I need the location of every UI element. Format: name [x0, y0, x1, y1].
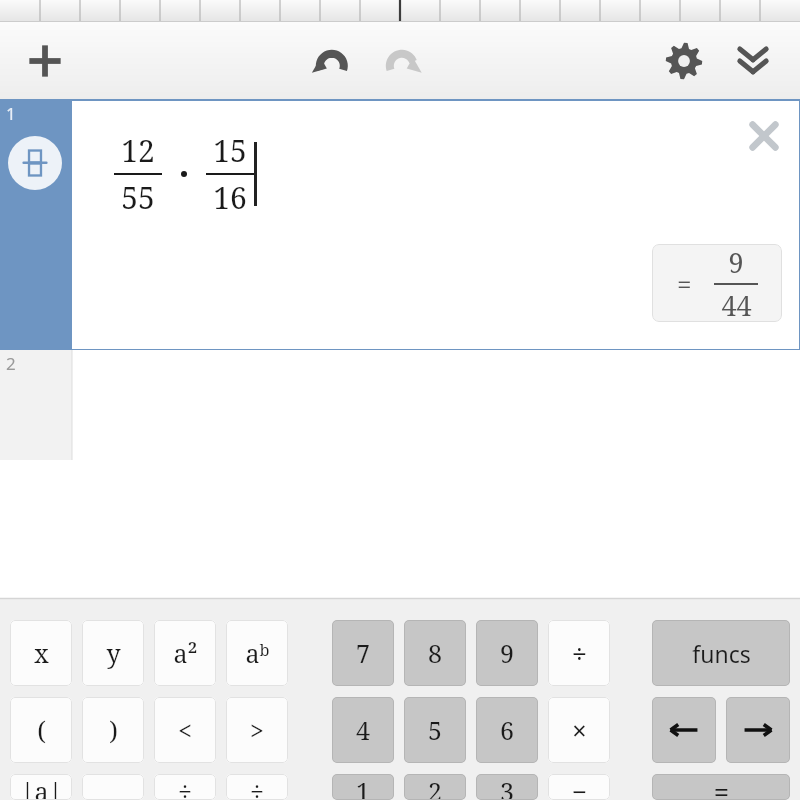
staticText: 5	[428, 713, 442, 747]
staticText: 16	[213, 177, 247, 218]
button[interactable]: |a|	[10, 774, 72, 800]
staticText: =	[714, 774, 729, 800]
staticText: aᵇ	[245, 636, 270, 670]
button[interactable]: New expression	[14, 22, 76, 100]
staticText: 3	[500, 774, 514, 800]
staticText: 6	[500, 713, 514, 747]
button[interactable]: 5	[404, 697, 466, 763]
staticText: ×	[572, 713, 587, 747]
button[interactable]: 2	[404, 774, 466, 800]
staticText: 44	[721, 287, 752, 322]
button[interactable]: 6	[476, 697, 538, 763]
button[interactable]: aᵇ	[226, 620, 288, 686]
button[interactable]: Redo	[370, 22, 432, 100]
button[interactable]: ÷	[226, 774, 288, 800]
button[interactable]: Move right	[726, 697, 790, 763]
staticText: 9	[728, 244, 744, 281]
button[interactable]: ×	[548, 697, 610, 763]
button[interactable]: )	[82, 697, 144, 763]
button[interactable]: −	[548, 774, 610, 800]
button[interactable]: 4	[332, 697, 394, 763]
button[interactable]: (	[10, 697, 72, 763]
staticText: 4	[356, 713, 370, 747]
staticText: 15	[213, 130, 247, 171]
button[interactable]: Hide keypad	[723, 22, 783, 100]
button[interactable]: Delete expression	[738, 110, 790, 162]
staticText: 2	[6, 352, 16, 375]
staticText: a²	[173, 636, 198, 670]
staticText: 1	[6, 102, 16, 125]
staticText: (	[37, 713, 46, 747]
staticText: y	[106, 636, 121, 670]
staticText: 7	[356, 636, 370, 670]
staticText: −	[572, 774, 587, 800]
button[interactable]: =	[652, 244, 782, 322]
button[interactable]: a²	[154, 620, 216, 686]
staticText: 2	[428, 774, 442, 800]
button[interactable]: 9	[476, 620, 538, 686]
button[interactable]: funcs	[652, 620, 790, 686]
button[interactable]: ÷	[154, 774, 216, 800]
staticText: >	[250, 713, 264, 747]
staticText: 1	[356, 774, 370, 800]
button[interactable]: Undo	[300, 22, 362, 100]
button[interactable]: <	[154, 697, 216, 763]
staticText: )	[109, 713, 118, 747]
staticText: ÷	[178, 774, 192, 800]
button[interactable]: 1	[332, 774, 394, 800]
button[interactable]: Move left	[652, 697, 716, 763]
button[interactable]: Fraction	[8, 136, 62, 190]
button[interactable]: Settings	[654, 22, 714, 100]
staticText: =	[677, 266, 692, 301]
staticText: funcs	[692, 638, 751, 669]
staticText: x	[34, 636, 49, 670]
button[interactable]: ÷	[548, 620, 610, 686]
staticText: 55	[121, 177, 155, 218]
button[interactable]: 8	[404, 620, 466, 686]
button[interactable]: y	[82, 620, 144, 686]
button[interactable]: 1	[0, 100, 72, 350]
staticText: |a|	[20, 774, 63, 800]
staticText: ÷	[572, 636, 587, 670]
button[interactable]: 7	[332, 620, 394, 686]
staticText: 8	[428, 636, 442, 670]
button[interactable]: 2	[0, 350, 72, 460]
staticText: <	[178, 713, 192, 747]
button[interactable]: 3	[476, 774, 538, 800]
button[interactable]: =	[652, 774, 790, 800]
button[interactable]: >	[226, 697, 288, 763]
staticText: 12	[121, 130, 155, 171]
staticText: 9	[500, 636, 514, 670]
button[interactable]: 12	[72, 100, 800, 350]
staticText: ÷	[250, 774, 264, 800]
button[interactable]: x	[10, 620, 72, 686]
button[interactable]	[82, 774, 144, 800]
